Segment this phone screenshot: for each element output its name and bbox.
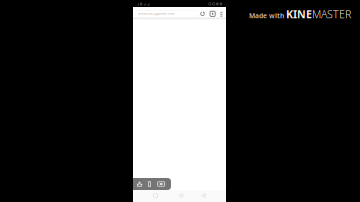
button[interactable]: Like <box>137 182 142 187</box>
button[interactable]: www.crazygames.com <box>135 10 199 17</box>
button[interactable]: Attach <box>148 181 151 187</box>
button[interactable]: Reload <box>200 11 205 16</box>
button[interactable]: Tabs <box>210 11 216 17</box>
staticText: MASTER <box>312 7 351 21</box>
button[interactable]: More options <box>220 11 223 17</box>
staticText: Made with <box>249 11 286 20</box>
staticText: KINE <box>286 7 312 21</box>
staticText: www.crazygames.com <box>138 12 175 16</box>
button[interactable]: Keyboard <box>158 182 165 186</box>
button[interactable]: Back <box>196 190 210 201</box>
button[interactable]: Home <box>174 190 188 201</box>
button[interactable]: Recents <box>148 190 162 201</box>
